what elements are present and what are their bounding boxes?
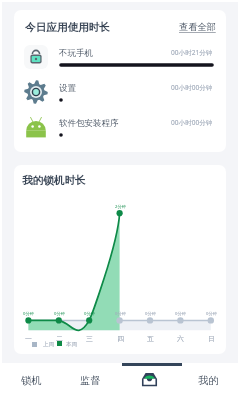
staticText: 0分钟 <box>84 311 95 317</box>
staticText: 我的 <box>198 374 219 387</box>
staticText: 0分钟 <box>175 311 186 317</box>
staticText: 今日应用使用时长 <box>25 21 110 34</box>
staticText: 设置 <box>59 83 76 94</box>
button[interactable]: 软件包安装程序 <box>14 113 226 148</box>
staticText: 监督 <box>80 374 101 387</box>
button[interactable]: 锁机 <box>2 363 61 398</box>
staticText: 不玩手机 <box>59 48 93 59</box>
staticText: 三 <box>86 334 93 343</box>
staticText: 0分钟 <box>145 311 156 317</box>
staticText: 日 <box>208 334 215 343</box>
staticText: 上周 <box>43 341 55 348</box>
staticText: 本周 <box>66 341 78 348</box>
staticText: 一 <box>25 334 32 343</box>
staticText: 00小时00分钟 <box>171 83 213 92</box>
staticText: 0分钟 <box>206 311 217 317</box>
staticText: 锁机 <box>21 374 42 387</box>
staticText: 查看全部 <box>179 21 216 33</box>
staticText: 软件包安装程序 <box>59 118 119 129</box>
staticText: 0分钟 <box>115 311 126 317</box>
staticText: 0分钟 <box>23 311 34 317</box>
staticText: 00小时00分钟 <box>171 118 213 127</box>
button[interactable]: 收件箱 <box>120 363 179 398</box>
button[interactable]: 我的 <box>179 363 238 398</box>
staticText: 2分钟 <box>115 204 126 210</box>
staticText: 我的锁机时长 <box>22 174 86 187</box>
staticText: 五 <box>147 334 154 343</box>
staticText: 六 <box>177 334 184 343</box>
staticText: 四 <box>117 334 124 343</box>
button[interactable]: 监督 <box>61 363 120 398</box>
staticText: 二 <box>56 334 63 343</box>
staticText: 00小时21分钟 <box>171 48 213 57</box>
button[interactable]: 不玩手机 <box>14 43 226 78</box>
staticText: 0分钟 <box>54 311 65 317</box>
button[interactable]: 设置 <box>14 78 226 113</box>
button[interactable]: 查看全部 <box>172 19 216 35</box>
